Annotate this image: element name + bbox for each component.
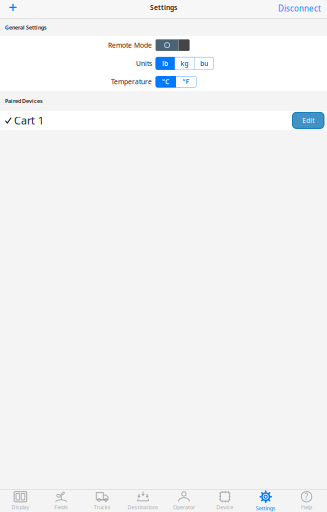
button[interactable]: Device: [204, 490, 245, 512]
staticText: bu: [200, 59, 208, 68]
staticText: Device: [216, 504, 233, 511]
staticText: Settings: [150, 3, 177, 12]
staticText: Remote Mode: [108, 41, 152, 50]
button[interactable]: Trucks: [82, 490, 123, 512]
staticText: Units: [136, 59, 152, 68]
button[interactable]: kg: [175, 57, 194, 70]
staticText: Fields: [54, 504, 68, 511]
staticText: lb: [162, 59, 168, 68]
staticText: ?: [305, 491, 309, 502]
staticText: Display: [11, 504, 29, 511]
staticText: Cart 1: [14, 113, 44, 127]
staticText: General Settings: [5, 24, 47, 31]
staticText: Settings: [256, 505, 276, 512]
button[interactable]: lb: [156, 57, 175, 70]
staticText: Help: [301, 504, 312, 511]
button[interactable]: Disconnect: [275, 1, 324, 14]
staticText: °C: [162, 77, 169, 86]
staticText: °F: [183, 77, 190, 86]
staticText: Destinations: [128, 504, 159, 511]
button[interactable]: °F: [176, 76, 197, 87]
button[interactable]: bu: [195, 57, 213, 70]
staticText: Edit: [302, 116, 314, 125]
button[interactable]: Edit: [292, 112, 324, 128]
button[interactable]: Remote Mode: [156, 39, 190, 51]
button[interactable]: Add device: [3, 0, 23, 14]
staticText: Temperature: [111, 77, 152, 86]
button[interactable]: Destinations: [123, 490, 163, 512]
staticText: Paired Devices: [5, 97, 43, 104]
button[interactable]: °C: [156, 76, 176, 87]
button[interactable]: ?: [286, 490, 327, 512]
staticText: Operator: [173, 504, 195, 511]
button[interactable]: Fields: [41, 490, 82, 512]
staticText: kg: [181, 59, 189, 68]
staticText: Trucks: [94, 504, 111, 511]
button[interactable]: Operator: [163, 490, 204, 512]
button[interactable]: Cart 1: [0, 111, 327, 130]
button[interactable]: Display: [0, 490, 41, 512]
staticText: Disconnect: [278, 3, 321, 14]
button[interactable]: Settings: [245, 490, 286, 512]
